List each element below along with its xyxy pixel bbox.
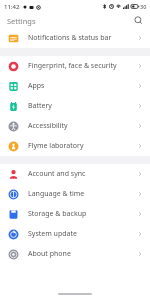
button[interactable]: Language & time — [0, 184, 150, 204]
staticText: System update — [28, 229, 137, 239]
staticText: Storage & backup — [28, 209, 137, 219]
staticText: Fingerprint, face & security — [28, 61, 137, 71]
button[interactable]: Storage & backup — [0, 204, 150, 224]
button[interactable]: Search — [132, 14, 145, 27]
button[interactable]: About phone — [0, 244, 150, 264]
button[interactable]: Apps — [0, 76, 150, 96]
staticText: Accessibility — [28, 121, 137, 131]
staticText: Account and sync — [28, 169, 137, 179]
button[interactable]: Battery — [0, 96, 150, 116]
staticText: 30 — [140, 3, 147, 10]
button[interactable]: Notifications & status bar — [0, 28, 150, 48]
staticText: About phone — [28, 249, 137, 259]
staticText: Flyme laboratory — [28, 141, 137, 151]
staticText: Language & time — [28, 189, 137, 199]
button[interactable]: Fingerprint, face & security — [0, 56, 150, 76]
button[interactable]: Flyme laboratory — [0, 136, 150, 156]
button[interactable]: System update — [0, 224, 150, 244]
button[interactable]: Account and sync — [0, 164, 150, 184]
staticText: Notifications & status bar — [28, 33, 137, 43]
button[interactable]: Accessibility — [0, 116, 150, 136]
staticText: Battery — [28, 101, 137, 111]
staticText: Settings — [7, 16, 36, 26]
staticText: 11:42 — [4, 3, 20, 11]
staticText: Apps — [28, 81, 137, 91]
